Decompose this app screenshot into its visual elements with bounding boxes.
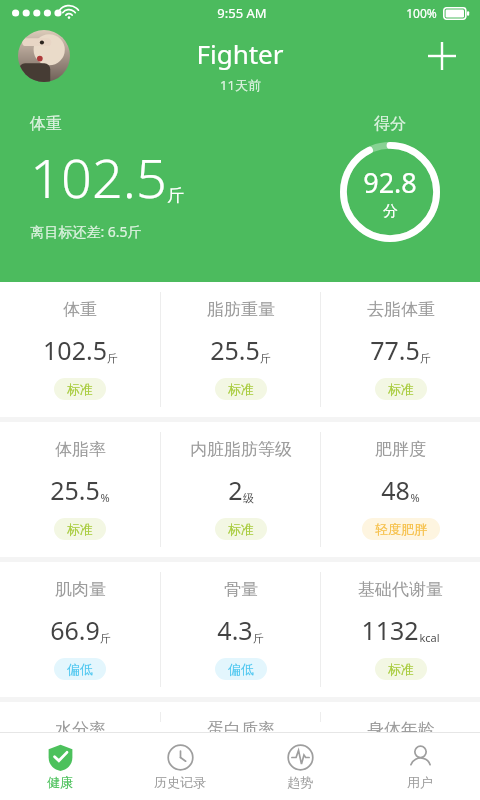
staticText: 2 [228,473,243,507]
staticText: 肌肉量 [55,579,106,600]
staticText: 25.5 [210,333,260,367]
staticText: 标准 [228,521,254,537]
staticText: 偏低 [67,661,93,677]
button[interactable]: 健康 [0,733,120,800]
staticText: 标准 [67,521,93,537]
staticText: 标准 [388,661,414,677]
staticText: 11天前 [220,76,261,94]
staticText: 斤 [420,351,431,365]
staticText: 48 [381,473,410,507]
staticText: 102.5 [30,140,167,214]
button[interactable]: 用户 [360,733,480,800]
staticText: 趋势 [287,774,313,790]
button[interactable]: 去脂体重 [321,282,480,417]
staticText: 斤 [253,631,264,645]
staticText: 斤 [100,631,111,645]
staticText: 102.5 [43,333,107,367]
staticText: % [100,490,110,505]
staticText: 偏低 [228,661,254,677]
button[interactable]: 内脏脂肪等级 [161,422,320,557]
button[interactable]: 肥胖度 [321,422,480,557]
staticText: 肥胖度 [375,439,426,460]
staticText: 健康 [47,774,73,790]
button[interactable]: 历史记录 [120,733,240,800]
staticText: Fighter [196,36,284,71]
staticText: 历史记录 [154,774,206,790]
staticText: 92.8 [363,164,417,201]
staticText: 25.5 [50,473,100,507]
staticText: 得分 [374,114,406,134]
staticText: 体重 [30,114,62,134]
staticText: 轻度肥胖 [375,521,427,537]
staticText: % [410,490,420,505]
staticText: 标准 [67,381,93,397]
staticText: 脂肪重量 [207,299,275,320]
staticText: 体重 [63,299,97,320]
staticText: 100% [406,5,437,21]
staticText: 去脂体重 [367,299,435,320]
button[interactable]: 基础代谢量 [321,562,480,697]
staticText: 基础代谢量 [358,579,443,600]
staticText: 用户 [407,774,433,790]
staticText: 斤 [107,351,118,365]
button[interactable]: 水分率 [0,702,160,732]
button[interactable]: 骨量 [161,562,320,697]
staticText: 标准 [228,381,254,397]
button[interactable]: 体重 [0,282,160,417]
button[interactable]: 身体年龄 [321,702,480,732]
staticText: 77.5 [370,333,420,367]
staticText: 内脏脂肪等级 [190,439,292,460]
button[interactable]: 蛋白质率 [161,702,320,732]
button[interactable]: 脂肪重量 [161,282,320,417]
staticText: 斤 [167,185,184,206]
staticText: 9:55 AM [217,4,267,22]
staticText: 4.3 [217,613,253,647]
staticText: 离目标还差: 6.5斤 [30,222,142,241]
staticText: 骨量 [224,579,258,600]
staticText: kcal [419,630,440,645]
button[interactable]: Profile photo [18,30,70,82]
staticText: 标准 [388,381,414,397]
staticText: 体脂率 [55,439,106,460]
staticText: 1132 [361,613,419,647]
staticText: 斤 [260,351,271,365]
staticText: 水分率 [55,719,106,732]
button[interactable]: 趋势 [240,733,360,800]
staticText: 身体年龄 [367,719,435,732]
button[interactable]: Add measurement [418,32,466,80]
staticText: 蛋白质率 [207,719,275,732]
button[interactable]: 肌肉量 [0,562,160,697]
button[interactable]: 体脂率 [0,422,160,557]
staticText: 分 [383,202,398,221]
staticText: 66.9 [50,613,100,647]
staticText: 级 [243,491,254,505]
